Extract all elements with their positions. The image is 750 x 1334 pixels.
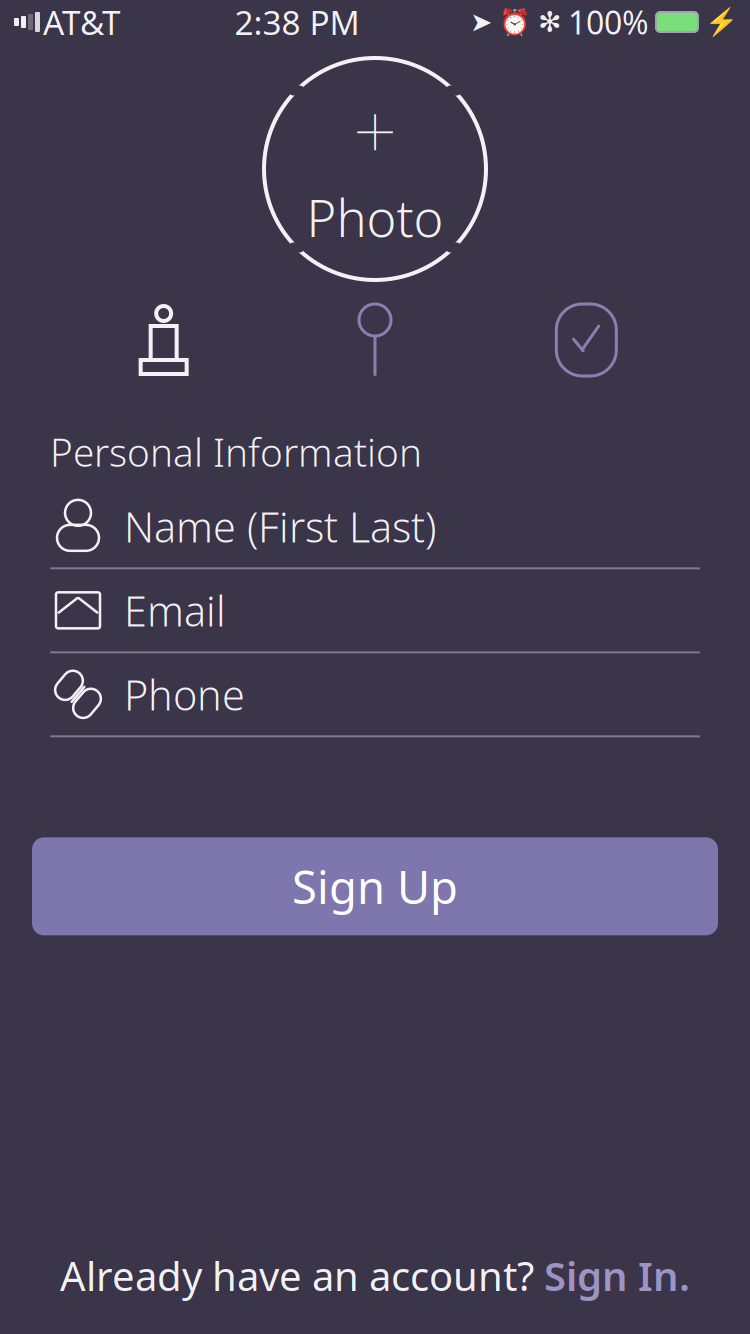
staticText: Phone [124, 667, 245, 722]
staticText: Sign In. [544, 1249, 690, 1302]
staticText: Name (First Last) [124, 499, 436, 554]
staticText: ➤ [470, 7, 492, 37]
button[interactable]: Email [50, 569, 700, 653]
staticText: Already have an account? [60, 1249, 534, 1302]
button[interactable]: Add Photo [264, 58, 486, 280]
staticText: ⚡ [705, 7, 738, 37]
staticText: ✻ [538, 6, 561, 38]
staticText: 100% [568, 1, 649, 43]
button[interactable]: Location step [346, 302, 404, 378]
button[interactable]: Phone [50, 653, 700, 737]
button[interactable]: Verification step [557, 302, 615, 378]
staticText: + [353, 79, 397, 182]
button[interactable]: Sign Up [32, 837, 718, 935]
button[interactable]: Name (First Last) [50, 485, 700, 569]
staticText: Personal Information [50, 426, 422, 477]
staticText: 2:38 PM [234, 0, 359, 44]
button[interactable]: Personal Information step [135, 302, 193, 378]
staticText: Photo [306, 184, 443, 251]
button[interactable]: Already have an account? [60, 1249, 690, 1302]
staticText: AT&T [43, 0, 121, 44]
staticText: Email [124, 583, 226, 638]
staticText: Sign Up [292, 856, 458, 916]
staticText: ⏰ [499, 7, 531, 36]
